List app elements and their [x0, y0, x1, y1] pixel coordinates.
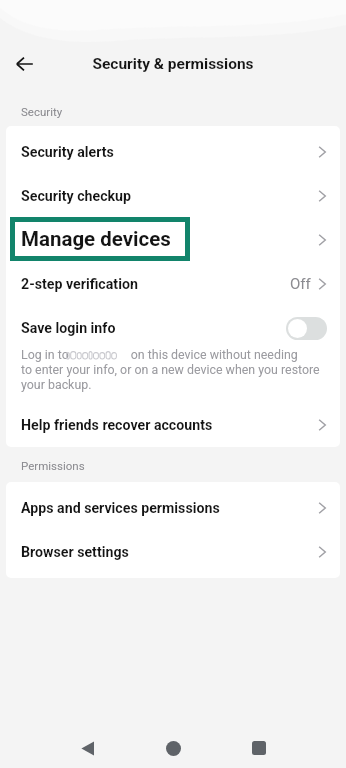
staticText: Save login info: [21, 320, 116, 337]
staticText: Permissions: [21, 459, 85, 472]
staticText: Security & permissions: [92, 55, 254, 73]
button[interactable]: Recent apps: [237, 728, 281, 768]
staticText: Security alerts: [21, 144, 114, 161]
button[interactable]: Apps and services permissions: [6, 486, 340, 530]
button[interactable]: Home: [151, 728, 195, 768]
button[interactable]: Help friends recover accounts: [6, 403, 340, 447]
button[interactable]: Security checkup: [6, 174, 340, 218]
staticText: Browser settings: [21, 544, 129, 561]
staticText: Log in to Instagram on this device witho…: [21, 347, 320, 392]
staticText: 2-step verification: [21, 276, 138, 293]
button[interactable]: Save login info: [6, 306, 340, 350]
button[interactable]: Browser settings: [6, 530, 340, 574]
staticText: Apps and services permissions: [21, 500, 220, 517]
staticText: Security checkup: [21, 188, 132, 205]
staticText: Security: [21, 105, 63, 118]
button[interactable]: Security alerts: [6, 130, 340, 174]
button[interactable]: Back: [65, 728, 109, 768]
button[interactable]: 2-step verification: [6, 262, 340, 306]
button[interactable]: Back: [4, 44, 44, 84]
staticText: Manage devices: [21, 227, 171, 251]
button[interactable]: [6, 218, 340, 262]
staticText: Off: [290, 275, 311, 293]
staticText: Help friends recover accounts: [21, 417, 213, 434]
